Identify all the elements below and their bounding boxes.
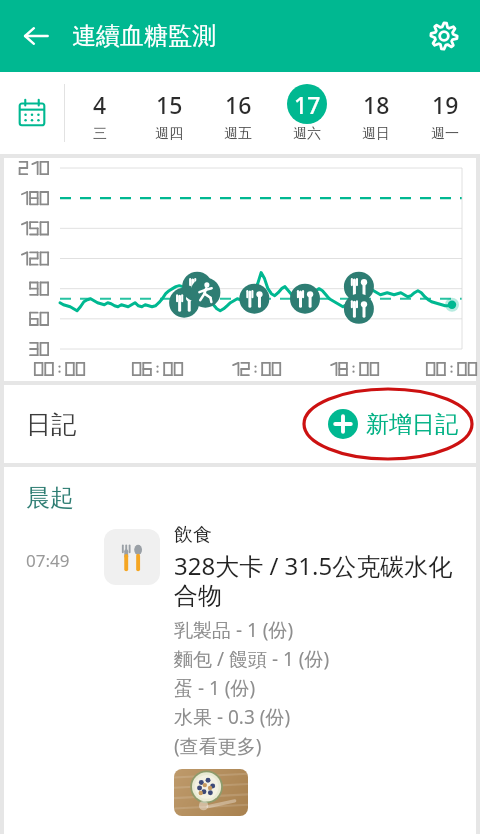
staticText: 新增日記 [366,410,458,439]
staticText: 328大卡 / 31.5公克碳水化合物 [174,549,464,612]
button[interactable]: 17 [276,84,338,143]
staticText: 4 [93,89,107,120]
button[interactable]: 16 [207,84,269,143]
button[interactable]: Settings [420,12,468,60]
staticText: 乳製品 - 1 (份) [174,617,294,643]
staticText: 15 [156,89,183,120]
staticText: 18 [363,89,390,120]
staticText: 週六 [293,125,321,143]
staticText: 蛋 - 1 (份) [174,675,256,701]
button[interactable]: 19 [414,84,476,143]
button[interactable]: 新增日記 [328,409,458,439]
staticText: 17 [294,89,321,120]
staticText: 週四 [155,125,183,143]
staticText: 晨起 [26,483,74,513]
staticText: 週一 [431,125,459,143]
staticText: 19 [432,89,459,120]
staticText: 三 [93,125,107,143]
staticText: 週日 [362,125,390,143]
button[interactable]: 18 [345,84,407,143]
button[interactable]: Calendar [0,72,64,154]
staticText: 水果 - 0.3 (份) [174,704,291,730]
button[interactable]: Back [12,12,60,60]
staticText: 飲食 [174,523,212,547]
button[interactable]: 15 [138,84,200,143]
button[interactable]: 07:49 [4,513,476,834]
staticText: 麵包 / 饅頭 - 1 (份) [174,646,330,672]
staticText: (查看更多) [174,733,262,759]
staticText: 週五 [224,125,252,143]
button[interactable]: Meal photo [174,769,248,816]
button[interactable]: 4 [69,84,131,143]
staticText: 07:49 [26,549,104,572]
staticText: 16 [225,89,252,120]
staticText: 日記 [26,409,76,440]
staticText: 連續血糖監測 [72,21,216,51]
